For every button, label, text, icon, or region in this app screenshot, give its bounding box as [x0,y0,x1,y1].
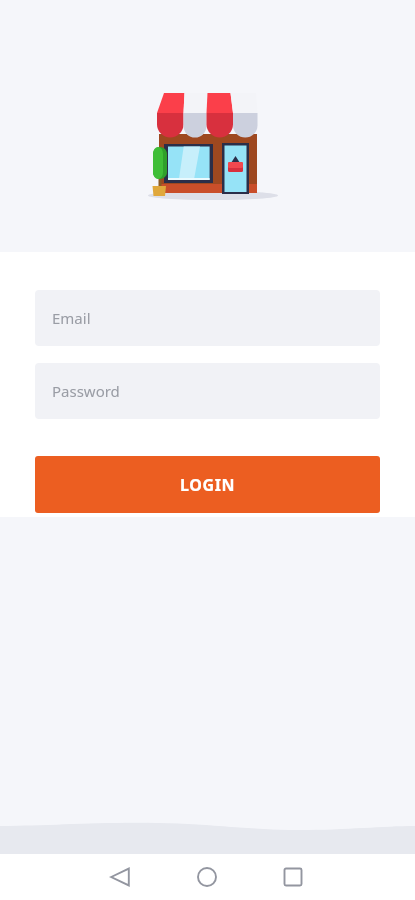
staticText: Email [52,308,91,328]
button[interactable]: Back [97,854,143,900]
button[interactable]: Email [35,290,380,346]
button[interactable]: Home [184,854,230,900]
button[interactable]: Recents [270,854,316,900]
staticText: LOGIN [180,474,236,496]
staticText: Password [52,381,120,401]
button[interactable]: LOGIN [35,456,380,513]
button[interactable]: Password [35,363,380,419]
